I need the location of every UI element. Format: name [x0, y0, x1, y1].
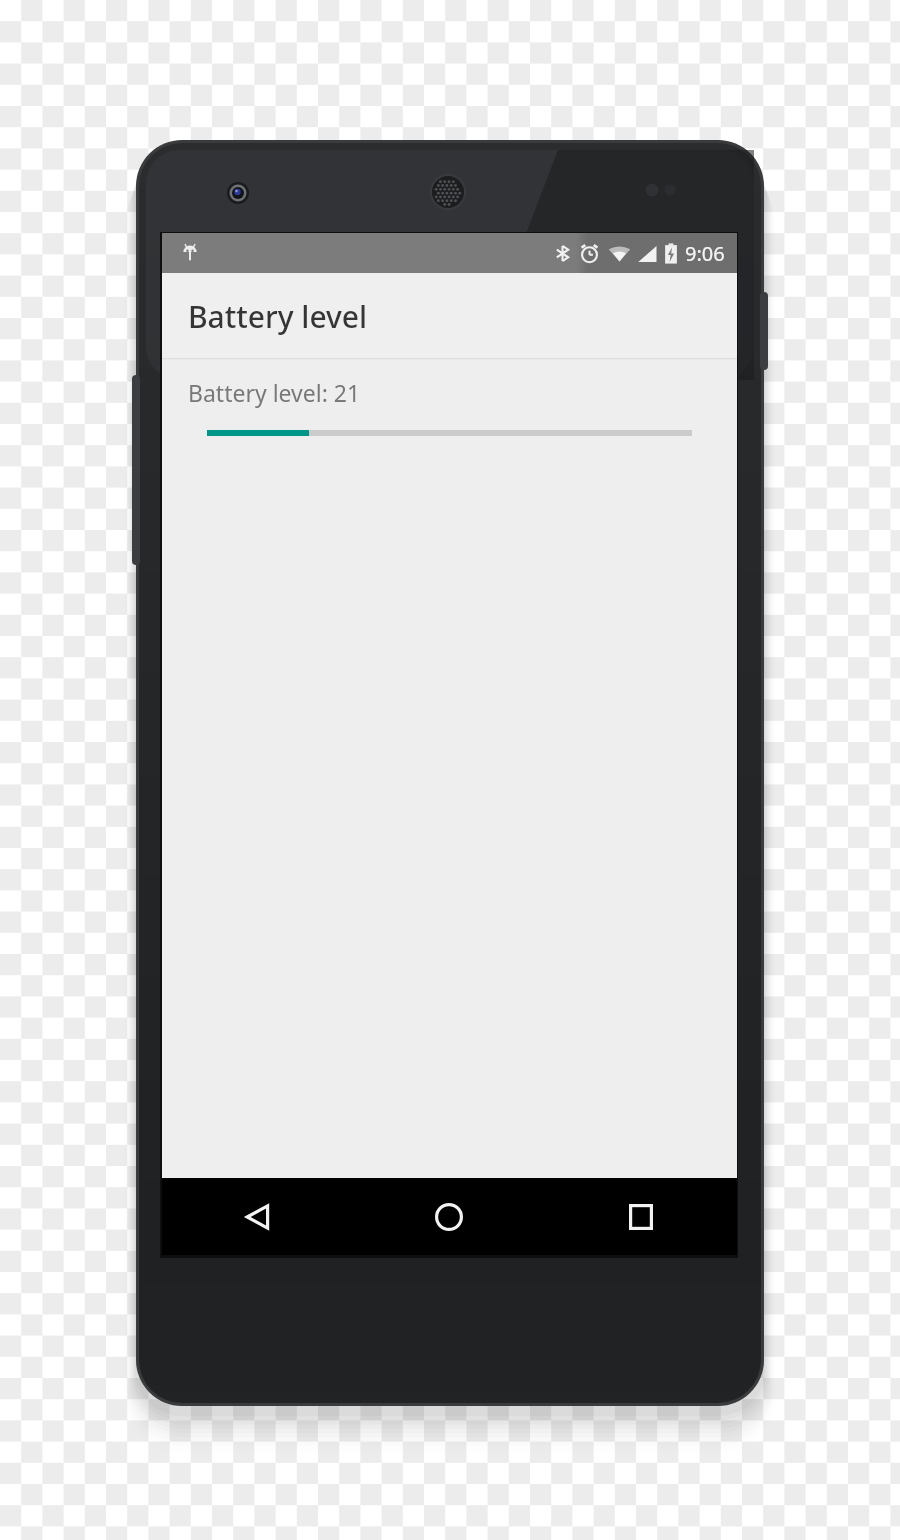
- button[interactable]: Home: [353, 1178, 545, 1255]
- button[interactable]: Recent apps: [545, 1178, 737, 1255]
- staticText: Battery level: [188, 296, 368, 337]
- staticText: Battery level: 21: [188, 377, 361, 408]
- staticText: 9:06: [685, 240, 725, 267]
- button[interactable]: Back: [162, 1178, 353, 1255]
